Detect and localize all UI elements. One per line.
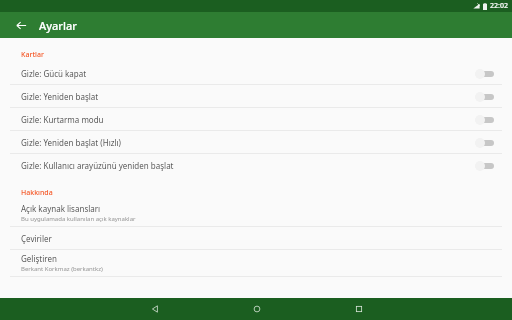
button[interactable]: Ana ekran xyxy=(206,298,308,320)
button[interactable]: Geri xyxy=(103,298,206,320)
button[interactable]: Gizle: Gücü kapat xyxy=(0,62,512,84)
button[interactable]: Gizle: Yeniden başlat xyxy=(0,85,512,107)
button[interactable]: Gizle: Kullanıcı arayüzünü yeniden başla… xyxy=(0,154,512,176)
staticText: Berkant Korkmaz (berkantkz) xyxy=(21,265,103,273)
staticText: Hakkında xyxy=(21,188,53,198)
staticText: Gizle: Kurtarma modu xyxy=(21,114,475,125)
button[interactable]: Geri xyxy=(12,16,30,34)
staticText: Bu uygulamada kullanılan açık kaynaklar xyxy=(21,215,136,223)
staticText: 22:02 xyxy=(490,1,508,11)
button[interactable]: Gizle: Yeniden başlat (Hızlı) xyxy=(0,131,512,153)
staticText: Gizle: Yeniden başlat xyxy=(21,91,475,102)
button[interactable]: Açık kaynak lisansları xyxy=(0,200,512,226)
staticText: Gizle: Kullanıcı arayüzünü yeniden başla… xyxy=(21,160,475,171)
staticText: Ayarlar xyxy=(39,18,77,33)
button[interactable]: Geliştiren xyxy=(0,250,512,276)
staticText: Kartlar xyxy=(21,50,44,60)
staticText: Geliştiren xyxy=(21,253,57,264)
button[interactable]: Son kullanılanlar xyxy=(308,298,410,320)
staticText: Açık kaynak lisansları xyxy=(21,203,101,214)
staticText: Gizle: Yeniden başlat (Hızlı) xyxy=(21,137,475,148)
button[interactable]: Gizle: Kurtarma modu xyxy=(0,108,512,130)
staticText: Gizle: Gücü kapat xyxy=(21,68,475,79)
button[interactable]: Çeviriler xyxy=(0,227,512,249)
staticText: Çeviriler xyxy=(21,233,52,244)
